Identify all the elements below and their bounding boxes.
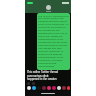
button[interactable]: Share target: [67, 86, 70, 90]
button[interactable]: Share target: [32, 86, 36, 90]
button[interactable]: Profile: [46, 5, 51, 10]
staticText: This online Twitter thread summarises wh…: [27, 70, 61, 80]
button[interactable]: Share target: [62, 86, 66, 90]
staticText: The UNFCCC Conference of the Parties (CO…: [38, 14, 69, 69]
button[interactable]: Copy: [27, 82, 30, 85]
button[interactable]: Share target: [57, 86, 61, 90]
button[interactable]: Share target: [42, 86, 46, 90]
button[interactable]: The UNFCCC Conference of the Parties (CO…: [37, 13, 70, 70]
button[interactable]: Edit: [32, 82, 35, 85]
button[interactable]: Share target: [52, 86, 56, 90]
button[interactable]: Share target: [27, 86, 31, 90]
staticText: Group: [46, 10, 51, 12]
button[interactable]: Share target: [47, 86, 51, 90]
